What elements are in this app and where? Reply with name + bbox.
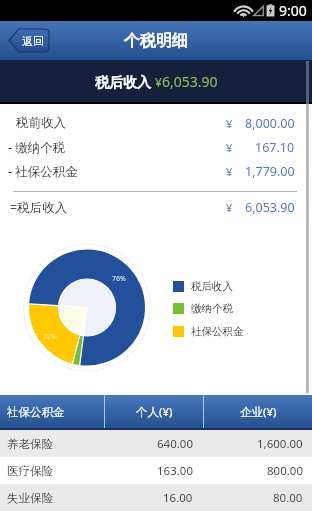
staticText: 8,000.00 <box>245 115 295 132</box>
staticText: ¥ <box>155 74 162 90</box>
staticText: 640.00 <box>157 436 193 452</box>
button[interactable]: 返回 <box>8 29 49 52</box>
button[interactable]: 医疗保险 <box>0 457 312 484</box>
staticText: - 社保公积金 <box>8 163 78 180</box>
staticText: 税前收入 <box>16 115 66 131</box>
staticText: =税后收入 <box>10 199 68 216</box>
staticText: ¥ <box>226 200 233 215</box>
staticText: 个税明细 <box>124 31 188 51</box>
staticText: 22% <box>43 332 57 342</box>
button[interactable]: - 社保公积金 <box>0 160 312 182</box>
button[interactable]: - 缴纳个税 <box>0 136 312 158</box>
staticText: 社保公积金 <box>191 325 244 338</box>
staticText: 失业保险 <box>7 491 53 505</box>
staticText: ¥ <box>226 116 233 131</box>
button[interactable]: 养老保险 <box>0 430 312 457</box>
staticText: 800.00 <box>267 463 303 479</box>
staticText: 1,600.00 <box>257 436 303 452</box>
staticText: 缴纳个税 <box>191 302 233 315</box>
staticText: 税后收入 <box>95 72 155 91</box>
staticText: 80.00 <box>273 490 303 506</box>
staticText: 个人(¥) <box>136 404 173 420</box>
staticText: ¥ <box>226 164 233 179</box>
staticText: 社保公积金 <box>7 405 65 419</box>
staticText: 76% <box>112 274 126 284</box>
staticText: 企业(¥) <box>240 404 277 420</box>
staticText: 税后收入 <box>191 280 233 293</box>
staticText: ¥ <box>226 140 233 155</box>
staticText: 返回 <box>22 34 44 48</box>
staticText: 医疗保险 <box>7 464 53 478</box>
staticText: 1,779.00 <box>245 163 295 180</box>
staticText: 6,053.90 <box>245 199 295 216</box>
staticText: 6,053.90 <box>162 72 218 91</box>
staticText: - 缴纳个税 <box>8 139 66 156</box>
staticText: 9:00 <box>279 1 307 20</box>
staticText: 16.00 <box>163 490 193 506</box>
button[interactable]: =税后收入 <box>0 196 312 218</box>
staticText: 163.00 <box>157 463 193 479</box>
button[interactable]: 税前收入 <box>0 112 312 134</box>
button[interactable]: 失业保险 <box>0 484 312 511</box>
staticText: 养老保险 <box>7 437 53 451</box>
staticText: 167.10 <box>255 139 295 156</box>
